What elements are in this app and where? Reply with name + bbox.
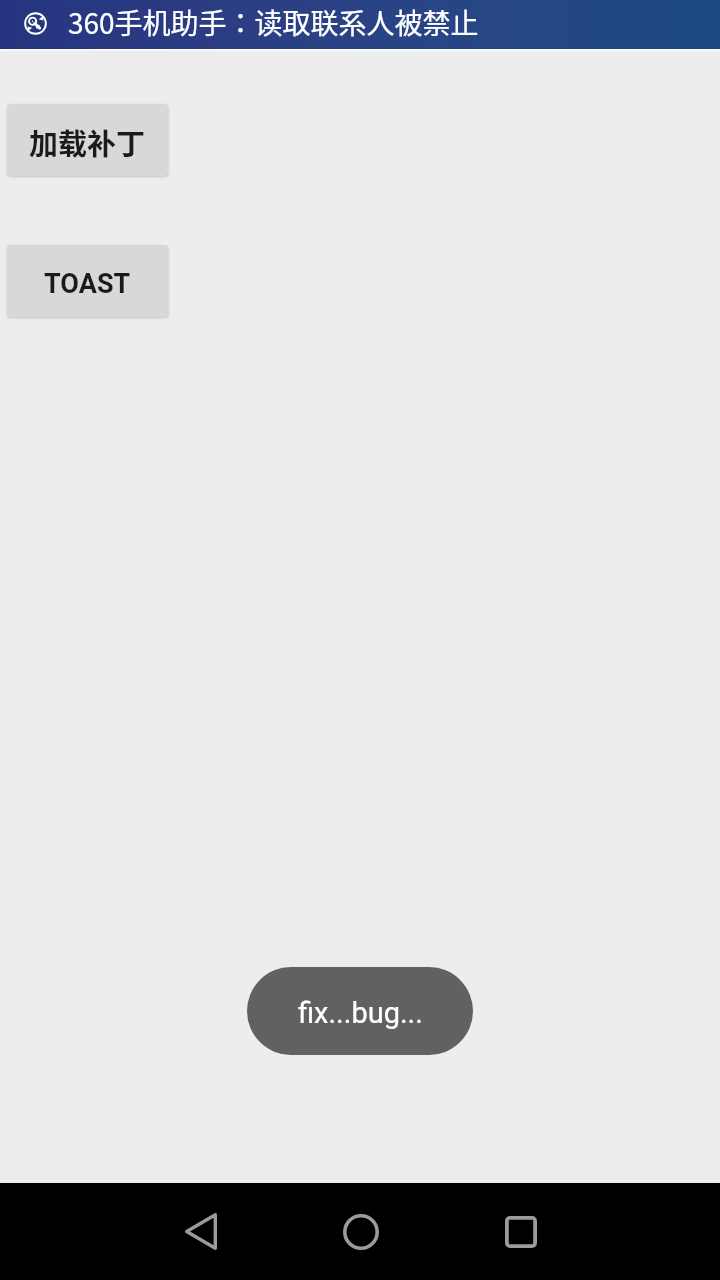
button[interactable]: TOAST	[7, 245, 168, 317]
button[interactable]: Back	[141, 1183, 261, 1280]
button[interactable]: 加载补丁	[7, 104, 168, 176]
staticText: fix...bug...	[298, 996, 423, 1030]
button[interactable]: Recents	[461, 1183, 581, 1280]
button[interactable]: Home	[301, 1183, 421, 1280]
staticText: TOAST	[44, 268, 131, 300]
staticText: 加载补丁	[29, 121, 146, 163]
other: 360 Mobile Assistant	[24, 12, 47, 35]
staticText: 360手机助手：读取联系人被禁止	[68, 2, 479, 43]
